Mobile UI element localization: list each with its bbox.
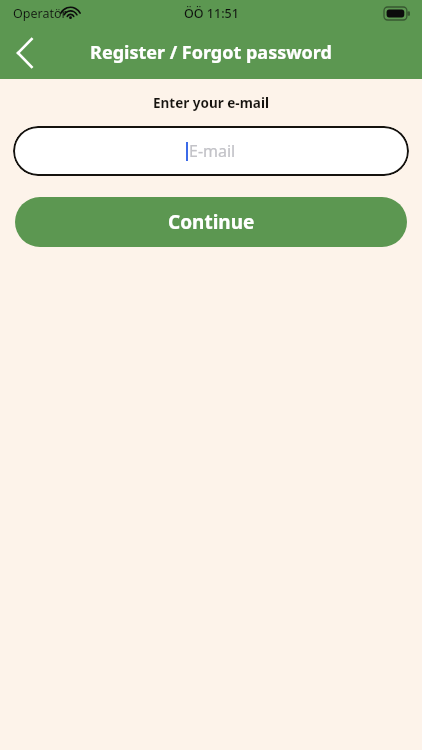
staticText: ÖÖ 11:51 [184,5,239,22]
staticText: E-mail [189,140,236,162]
staticText: Register / Forgot password [90,40,332,65]
button[interactable]: Back [0,26,48,79]
staticText: Operatör [13,5,67,22]
staticText: Continue [168,209,255,235]
staticText: Enter your e-mail [153,94,269,112]
button[interactable]: E-mail [13,126,409,176]
button[interactable]: Continue [15,197,407,247]
